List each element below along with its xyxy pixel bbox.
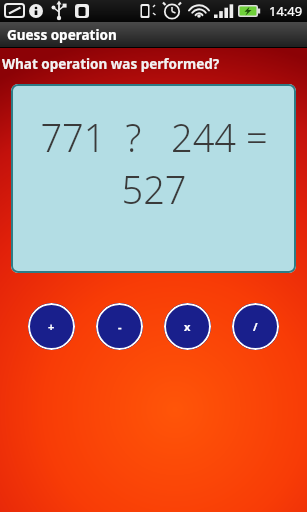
button[interactable]: Minus (96, 303, 143, 350)
staticText: - (118, 319, 122, 334)
button[interactable]: Plus (28, 303, 75, 350)
staticText: / (253, 319, 258, 334)
button[interactable]: 771 ? 244 = (11, 84, 296, 273)
staticText: 14:49 (269, 2, 303, 20)
staticText: Guess operation (7, 26, 117, 44)
staticText: What operation was performed? (2, 55, 220, 73)
staticText: 527 (121, 163, 187, 215)
staticText: 771 ? 244 = (40, 111, 268, 163)
staticText: + (48, 319, 55, 334)
button[interactable]: Divide (232, 303, 279, 350)
button[interactable]: Multiply (164, 303, 211, 350)
staticText: x (184, 319, 191, 334)
